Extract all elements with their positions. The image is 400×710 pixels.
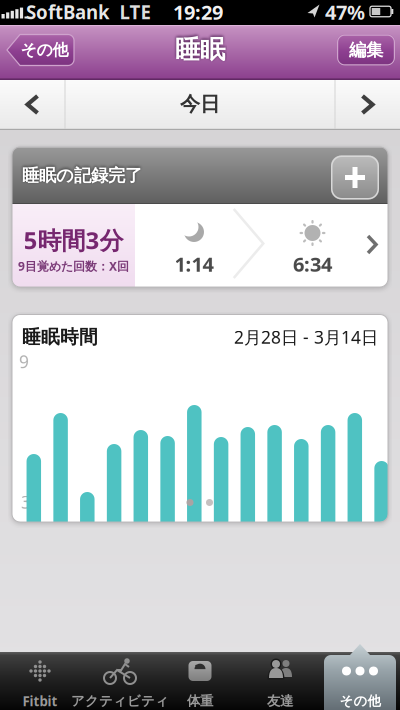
staticText: その他 xyxy=(339,693,380,709)
button[interactable]: 前の日 xyxy=(0,80,64,129)
staticText: 今日 xyxy=(180,92,220,116)
button[interactable]: 編集 xyxy=(337,34,395,65)
button[interactable]: 記録を追加 xyxy=(331,155,379,199)
staticText: 体重 xyxy=(187,693,213,709)
button[interactable]: アクティビティ xyxy=(80,652,160,710)
staticText: 編集 xyxy=(349,39,383,61)
staticText: 睡眠 xyxy=(175,34,225,65)
staticText: LTE xyxy=(119,0,150,24)
button[interactable]: 友達 xyxy=(240,652,320,710)
staticText: 47% xyxy=(325,0,365,25)
staticText: 友達 xyxy=(267,693,293,709)
staticText: アクティビティ xyxy=(71,693,169,709)
staticText: 5時間3分 xyxy=(23,224,123,256)
staticText: 3 xyxy=(21,490,31,513)
staticText: 1:14 xyxy=(174,251,213,277)
staticText: 2月28日 - 3月14日 xyxy=(234,325,378,348)
button[interactable]: 5時間3分 xyxy=(12,204,388,287)
staticText: 睡眠の記録完了 xyxy=(22,165,142,186)
staticText: Fitbit xyxy=(22,692,57,710)
button[interactable]: 体重 xyxy=(160,652,240,710)
button[interactable]: その他 xyxy=(7,34,74,65)
staticText: 9目覚めた回数：X回 xyxy=(18,258,129,274)
staticText: 6:34 xyxy=(293,251,332,277)
staticText: 9 xyxy=(19,350,29,373)
staticText: その他 xyxy=(20,40,68,60)
button[interactable]: Fitbit xyxy=(0,652,80,710)
staticText: 睡眠時間 xyxy=(22,325,98,348)
button[interactable]: 次の日 xyxy=(335,80,399,129)
button[interactable]: その他 xyxy=(320,652,400,710)
staticText: SoftBank xyxy=(26,0,110,24)
staticText: 19:29 xyxy=(173,0,223,25)
